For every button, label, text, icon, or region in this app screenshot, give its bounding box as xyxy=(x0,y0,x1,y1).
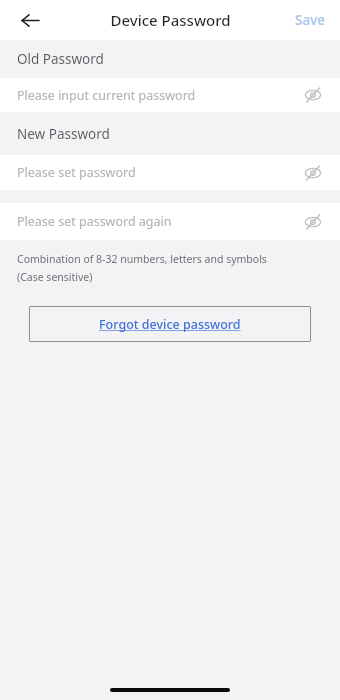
button[interactable]: Back xyxy=(14,4,46,36)
staticText: Save xyxy=(295,11,326,29)
button[interactable]: Show password xyxy=(300,160,326,186)
button[interactable]: Show password xyxy=(300,209,326,235)
button[interactable]: Please set password again xyxy=(0,203,340,240)
button[interactable]: Please set password xyxy=(0,155,340,190)
staticText: Old Password xyxy=(17,50,104,68)
staticText: Please set password again xyxy=(17,213,300,230)
staticText: (Case sensitive) xyxy=(17,270,93,284)
button[interactable]: Save xyxy=(281,3,340,37)
staticText: Device Password xyxy=(110,10,231,30)
staticText: New Password xyxy=(17,125,110,143)
button[interactable]: Please input current password xyxy=(0,78,340,112)
staticText: Forgot device password xyxy=(99,316,241,333)
staticText: Please input current password xyxy=(17,87,300,104)
button[interactable]: Forgot device password xyxy=(29,306,311,342)
button[interactable]: Show password xyxy=(300,82,326,108)
staticText: Combination of 8-32 numbers, letters and… xyxy=(17,252,267,266)
staticText: Please set password xyxy=(17,164,300,181)
